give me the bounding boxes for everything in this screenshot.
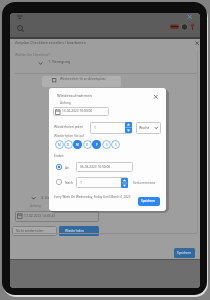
button[interactable]: [42, 76, 121, 87]
staticText: Speichern: [177, 251, 192, 255]
staticText: Wählen Sie Checkliste*: [15, 52, 51, 56]
staticText: Speichern: [141, 199, 156, 203]
staticText: M: [76, 143, 79, 147]
button[interactable]: D: [64, 140, 73, 149]
button[interactable]: S: [102, 140, 111, 149]
button[interactable]: S: [111, 140, 120, 149]
staticText: Vorkommnisse: [133, 181, 156, 185]
staticText: 1: [94, 125, 96, 129]
staticText: M: [58, 143, 61, 147]
button[interactable]: [125, 122, 132, 133]
staticText: 17-02-2023 14:43:43: [24, 213, 56, 217]
staticText: Every Week On Wednesday, Friday Until Ma…: [54, 195, 131, 199]
button[interactable]: [153, 94, 159, 100]
button[interactable]: Nicht wiederholen: [12, 226, 57, 236]
staticText: Woche: [139, 125, 150, 129]
staticText: S: [106, 143, 108, 147]
staticText: Wiederholen jeden: [54, 124, 84, 128]
staticText: 06-03-2023 10:50:00: [80, 165, 111, 169]
button[interactable]: F: [92, 140, 101, 149]
staticText: Endet:: [54, 153, 65, 158]
button[interactable]: [53, 107, 109, 116]
staticText: 1: [80, 180, 82, 184]
button[interactable]: [56, 179, 62, 185]
button[interactable]: [76, 162, 133, 172]
button[interactable]: M: [73, 140, 82, 149]
staticText: Anfang: [60, 101, 71, 105]
staticText: 1. Reinigung: [48, 59, 71, 64]
staticText: 13-02-2023 10:00:00: [62, 109, 93, 113]
button[interactable]: [17, 25, 25, 33]
staticText: Wiederaufnahmen: [57, 93, 93, 98]
button[interactable]: Woche: [136, 122, 161, 134]
button[interactable]: Wiederholen: [59, 226, 99, 236]
button[interactable]: [195, 41, 200, 46]
staticText: Wiederholen: [65, 229, 85, 233]
button[interactable]: Speichern: [174, 248, 195, 258]
button[interactable]: [56, 164, 62, 170]
staticText: D: [86, 143, 89, 147]
staticText: Zeitplan-Checkliste erstellen / bearbeit…: [15, 40, 86, 45]
staticText: Nach: [65, 180, 73, 184]
staticText: Wöchentlich: 56 an Arbeitsplatz: [60, 77, 106, 81]
button[interactable]: [15, 211, 99, 222]
staticText: An: [65, 165, 70, 169]
button[interactable]: Speichern: [138, 197, 160, 206]
button[interactable]: D: [83, 140, 92, 149]
staticText: D: [67, 143, 70, 147]
staticText: Anfang: [30, 204, 41, 208]
staticText: Nicht wiederholen: [16, 229, 44, 233]
staticText: F: [96, 143, 98, 147]
button[interactable]: M: [55, 140, 64, 149]
staticText: S: [115, 143, 117, 147]
staticText: Wiederholen Sie auf: [54, 134, 85, 138]
button[interactable]: [121, 178, 128, 188]
staticText: 3. Kontrolle Arbeit: [41, 195, 74, 200]
